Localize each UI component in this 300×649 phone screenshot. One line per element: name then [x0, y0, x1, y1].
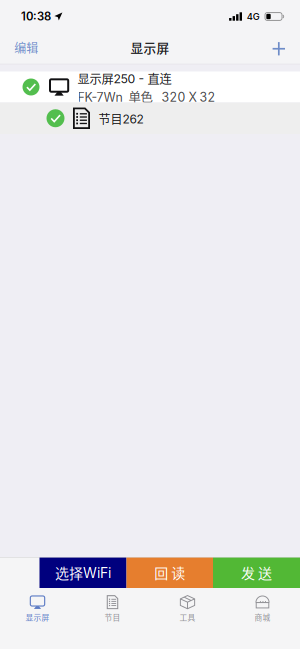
staticText: 4G — [247, 11, 260, 22]
staticText: 选择WiFi — [55, 562, 111, 583]
staticText: 编辑 — [14, 39, 38, 56]
staticText: 显示屏250 - 直连 — [77, 70, 171, 87]
staticText: 回 读 — [154, 562, 185, 583]
button[interactable]: 回 读 — [126, 557, 213, 588]
staticText: FK-7Wn 单色 320 X 32 — [77, 87, 215, 105]
staticText: 10:38 — [21, 10, 51, 23]
button[interactable]: 显示屏 — [0, 588, 75, 630]
button[interactable]: 选择WiFi — [39, 557, 126, 588]
staticText: 节目262 — [98, 110, 143, 128]
button[interactable]: 商城 — [225, 588, 300, 630]
staticText: 显示屏 — [130, 38, 169, 56]
staticText: 发 送 — [241, 562, 272, 583]
staticText: 显示屏 — [25, 612, 49, 623]
staticText: 商城 — [254, 612, 270, 623]
button[interactable]: 编辑 — [0, 33, 50, 64]
button[interactable]: 发 送 — [213, 557, 300, 588]
button[interactable]: 添加 — [259, 33, 300, 64]
staticText: 节目 — [104, 612, 120, 623]
staticText: 工具 — [179, 612, 195, 623]
button[interactable]: 工具 — [150, 588, 225, 630]
button[interactable]: 节目 — [75, 588, 150, 630]
button[interactable]: 显示屏250 - 直连 — [0, 71, 300, 102]
button[interactable]: 节目262 — [0, 102, 300, 134]
